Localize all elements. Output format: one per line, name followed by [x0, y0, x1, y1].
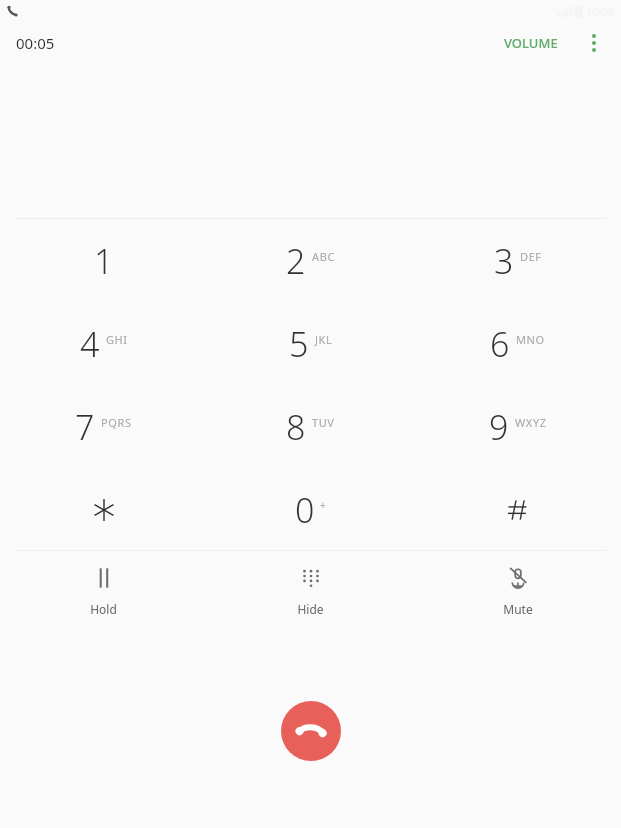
button[interactable]: End call — [281, 701, 341, 761]
button[interactable]: 5 — [207, 302, 414, 385]
staticText: + — [320, 498, 326, 512]
button[interactable]: 3 — [414, 219, 621, 302]
staticText: 7 — [75, 404, 95, 450]
button[interactable] — [414, 468, 621, 551]
staticText: 6 — [490, 321, 510, 367]
staticText: Mute — [503, 601, 533, 617]
staticText: WXYZ — [515, 415, 547, 430]
button[interactable]: 4 — [0, 302, 207, 385]
button[interactable]: More options — [576, 26, 612, 60]
staticText: 00:05 — [16, 33, 55, 53]
staticText: ABC — [312, 249, 335, 264]
staticText: MNO — [516, 332, 545, 347]
button[interactable] — [0, 468, 207, 551]
staticText: TUV — [312, 415, 335, 430]
staticText: 4 — [80, 321, 100, 367]
button[interactable]: 2 — [207, 219, 414, 302]
staticText: 8 — [286, 404, 306, 450]
staticText: 9 — [489, 404, 509, 450]
staticText: 5 — [289, 321, 309, 367]
button[interactable]: Mute — [414, 551, 621, 631]
staticText: DEF — [520, 249, 542, 264]
staticText: 2 — [286, 238, 306, 284]
button[interactable]: Hide — [207, 551, 414, 631]
button[interactable]: Hold — [0, 551, 207, 631]
staticText: 0 — [295, 487, 315, 533]
button[interactable]: VOLUME — [498, 28, 564, 58]
staticText: Hide — [297, 601, 324, 617]
staticText: 1 — [94, 238, 114, 284]
staticText: JKL — [315, 332, 333, 347]
button[interactable]: 6 — [414, 302, 621, 385]
staticText: 3 — [494, 238, 514, 284]
staticText: VOLUME — [504, 34, 558, 52]
staticText: PQRS — [101, 415, 132, 430]
button[interactable]: 1 — [0, 219, 207, 302]
button[interactable]: 0 — [207, 468, 414, 551]
button[interactable]: 7 — [0, 385, 207, 468]
staticText: Hold — [90, 601, 117, 617]
button[interactable]: 9 — [414, 385, 621, 468]
staticText: GHI — [106, 332, 128, 347]
button[interactable]: 8 — [207, 385, 414, 468]
